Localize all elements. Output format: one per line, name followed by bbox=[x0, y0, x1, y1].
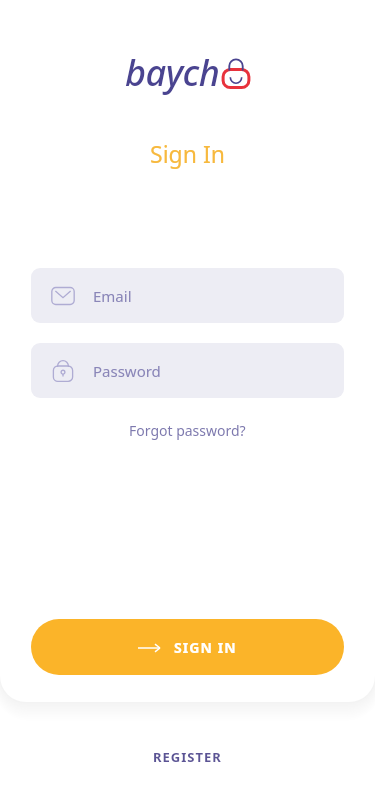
staticText: SIGN IN bbox=[174, 638, 237, 657]
button[interactable]: REGISTER bbox=[139, 740, 236, 774]
staticText: baych bbox=[125, 48, 220, 97]
button[interactable]: Forgot password? bbox=[121, 415, 254, 446]
button[interactable]: Email bbox=[31, 268, 344, 323]
button[interactable]: SIGN IN bbox=[31, 619, 344, 675]
staticText: Password bbox=[93, 361, 161, 381]
staticText: Sign In bbox=[150, 138, 225, 169]
staticText: Email bbox=[93, 286, 132, 306]
staticText: Forgot password? bbox=[129, 421, 246, 440]
staticText: REGISTER bbox=[153, 748, 222, 766]
button[interactable]: Password bbox=[31, 343, 344, 398]
